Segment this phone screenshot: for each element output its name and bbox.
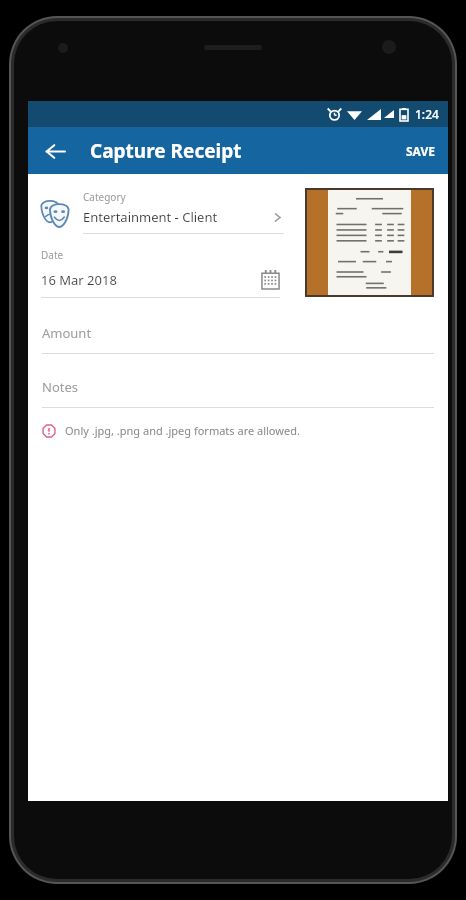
staticText: 1:24 (415, 106, 439, 122)
button[interactable]: Notes (28, 378, 448, 408)
other: Pick date (261, 270, 280, 289)
staticText: Capture Receipt (90, 138, 242, 164)
staticText: Category (83, 190, 126, 204)
staticText: 16 Mar 2018 (41, 271, 261, 289)
staticText: Date (41, 248, 64, 262)
button[interactable]: Receipt image (305, 188, 434, 297)
staticText: Entertainment - Client (83, 208, 271, 226)
staticText: Only .jpg, .png and .jpeg formats are al… (65, 423, 300, 438)
staticText: Amount (42, 324, 92, 342)
staticText: Notes (42, 378, 78, 396)
button[interactable]: Category (28, 190, 448, 234)
button[interactable]: Amount (28, 324, 448, 354)
button[interactable]: SAVE (393, 132, 448, 170)
button[interactable]: Date (28, 248, 448, 298)
button[interactable]: Back (36, 132, 74, 170)
staticText: SAVE (406, 143, 435, 159)
